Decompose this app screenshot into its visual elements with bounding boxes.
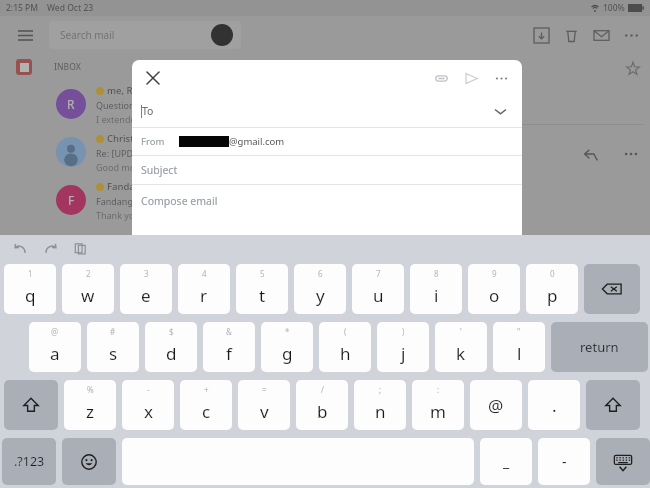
button[interactable]: &: [203, 322, 255, 372]
staticText: t: [259, 284, 266, 307]
button[interactable]: .: [528, 380, 580, 430]
button[interactable]: :: [412, 380, 464, 430]
staticText: 9: [492, 268, 497, 279]
button[interactable]: +: [180, 380, 232, 430]
button[interactable]: 0: [526, 264, 578, 314]
button[interactable]: Search mail: [49, 21, 241, 49]
button[interactable]: Expand recipients: [490, 101, 510, 121]
button[interactable]: 5: [236, 264, 288, 314]
staticText: 4: [202, 268, 207, 279]
button[interactable]: ;: [354, 380, 406, 430]
button[interactable]: Archive: [526, 20, 556, 50]
staticText: -: [562, 452, 567, 471]
staticText: Search mail: [60, 28, 115, 42]
button[interactable]: -: [538, 438, 590, 485]
staticText: +: [204, 384, 209, 395]
staticText: k: [456, 342, 466, 365]
staticText: Christ: [107, 132, 134, 145]
button[interactable]: Christ: [6, 128, 253, 176]
staticText: Thank you: [96, 209, 140, 221]
button[interactable]: ): [377, 322, 429, 372]
button[interactable]: Undo: [8, 236, 32, 260]
staticText: w: [81, 284, 95, 307]
button[interactable]: Subject: [132, 156, 522, 184]
staticText: R: [67, 96, 75, 112]
button[interactable]: Emoji: [62, 438, 116, 485]
button[interactable]: @: [470, 380, 522, 430]
button[interactable]: 6: [294, 264, 346, 314]
staticText: $: [169, 326, 174, 337]
staticText: j: [401, 342, 406, 365]
staticText: s: [109, 342, 118, 365]
button[interactable]: $: [145, 322, 197, 372]
button[interactable]: Backspace: [584, 264, 640, 314]
button[interactable]: F: [6, 176, 253, 224]
button[interactable]: From: [132, 128, 522, 155]
button[interactable]: Send: [458, 65, 484, 91]
button[interactable]: @: [29, 322, 81, 372]
button[interactable]: More options: [618, 141, 644, 167]
staticText: Good mor: [96, 161, 139, 173]
button[interactable]: More: [616, 20, 646, 50]
button[interactable]: 9: [468, 264, 520, 314]
button[interactable]: ": [493, 322, 545, 372]
button[interactable]: *: [261, 322, 313, 372]
button[interactable]: -: [122, 380, 174, 430]
button[interactable]: 2: [62, 264, 114, 314]
staticText: z: [86, 400, 94, 423]
staticText: Fanda: [107, 180, 135, 193]
button[interactable]: Shift right: [586, 380, 640, 430]
button[interactable]: 8: [410, 264, 462, 314]
staticText: r: [200, 284, 208, 307]
staticText: ': [460, 326, 462, 337]
staticText: me, R: [107, 84, 133, 97]
button[interactable]: 4: [178, 264, 230, 314]
button[interactable]: Star: [622, 58, 644, 80]
button[interactable]: 1: [4, 264, 56, 314]
staticText: 2: [86, 268, 91, 279]
button[interactable]: _: [480, 438, 532, 485]
staticText: @: [488, 394, 504, 417]
button[interactable]: More: [488, 65, 514, 91]
staticText: 8: [434, 268, 439, 279]
button[interactable]: Delete: [556, 20, 586, 50]
button[interactable]: 7: [352, 264, 404, 314]
staticText: p: [547, 284, 558, 307]
staticText: ;: [379, 384, 382, 395]
button[interactable]: Hide keyboard: [596, 438, 650, 485]
staticText: q: [25, 284, 36, 307]
staticText: g: [282, 342, 293, 365]
button[interactable]: Mark unread: [586, 20, 616, 50]
staticText: Question: [96, 99, 137, 111]
button[interactable]: 3: [120, 264, 172, 314]
button[interactable]: /: [296, 380, 348, 430]
button[interactable]: ': [435, 322, 487, 372]
staticText: %: [87, 384, 94, 395]
button[interactable]: To: [132, 95, 522, 127]
staticText: e: [141, 284, 151, 307]
staticText: u: [373, 284, 384, 307]
button[interactable]: R: [6, 80, 253, 128]
button[interactable]: #: [87, 322, 139, 372]
button[interactable]: Shift: [4, 380, 58, 430]
staticText: 2:15 PM: [6, 2, 39, 14]
staticText: 100%: [603, 2, 625, 14]
button[interactable]: Paste: [68, 236, 92, 260]
button[interactable]: .?123: [2, 438, 56, 485]
button[interactable]: Attach: [428, 65, 454, 91]
button[interactable]: Redo: [38, 236, 62, 260]
staticText: a: [50, 342, 60, 365]
staticText: g them. It may be a few: [265, 181, 398, 197]
button[interactable]: Menu: [14, 24, 36, 46]
button[interactable]: Reply: [578, 141, 604, 167]
staticText: Fandango: [96, 195, 139, 207]
button[interactable]: Compose email: [132, 185, 522, 235]
button[interactable]: %: [64, 380, 116, 430]
button[interactable]: Close: [140, 65, 166, 91]
staticText: h: [340, 342, 351, 365]
button[interactable]: (: [319, 322, 371, 372]
button[interactable]: =: [238, 380, 290, 430]
button[interactable]: return: [551, 322, 648, 372]
